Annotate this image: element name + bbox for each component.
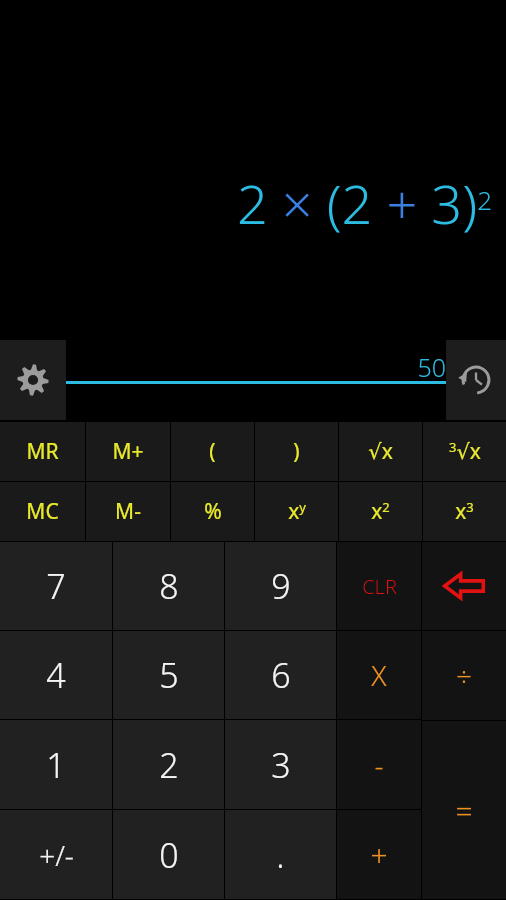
button[interactable]: 4 [0,631,112,719]
staticText: 2 [159,742,179,788]
button[interactable]: 0 [113,810,224,899]
button[interactable]: % [171,482,254,541]
button[interactable]: Backspace [422,542,506,630]
staticText: MC [26,497,59,526]
staticText: ÷ [456,657,472,695]
button[interactable]: ( [171,422,254,481]
staticText: 3√x [449,437,481,466]
button[interactable]: x2 [339,482,422,541]
staticText: 6 [271,652,291,698]
staticText: x2 [371,497,390,526]
staticText: 50 [417,350,446,384]
button[interactable]: √x [339,422,422,481]
staticText: √x [368,437,393,466]
button[interactable]: 3√x [423,422,506,481]
button[interactable]: CLR [337,542,421,630]
staticText: 3 [271,742,291,788]
button[interactable]: History [446,340,506,420]
staticText: 9 [271,563,291,609]
staticText: 1 [46,742,66,788]
staticText: ) [293,437,300,466]
staticText: MR [26,437,59,466]
staticText: xy [288,497,306,526]
button[interactable]: xy [255,482,338,541]
button[interactable]: ) [255,422,338,481]
button[interactable]: X [337,631,421,719]
button[interactable]: ÷ [422,631,506,720]
staticText: % [204,497,222,526]
staticText: - [374,746,384,784]
button[interactable]: 1 [0,720,112,809]
staticText: 2 × (2 + 3)2 [236,166,492,240]
staticText: CLR [362,573,397,600]
button[interactable]: + [337,810,421,899]
button[interactable]: 8 [113,542,224,630]
staticText: ( [209,437,216,466]
button[interactable]: M- [86,482,170,541]
button[interactable]: 7 [0,542,112,630]
staticText: 0 [159,832,179,878]
staticText: +/- [39,836,74,874]
button[interactable]: 9 [225,542,336,630]
button[interactable]: 3 [225,720,336,809]
button[interactable]: M+ [86,422,170,481]
staticText: 7 [46,563,66,609]
staticText: 5 [159,652,179,698]
staticText: 4 [46,652,66,698]
button[interactable]: 5 [113,631,224,719]
button[interactable]: 6 [225,631,336,719]
button[interactable]: +/- [0,810,112,899]
button[interactable]: - [337,720,421,809]
staticText: 8 [159,563,179,609]
staticText: M- [115,497,141,526]
button[interactable]: Settings [0,340,66,420]
staticText: X [371,656,387,694]
staticText: . [276,832,285,878]
button[interactable]: MR [0,422,85,481]
staticText: x3 [455,497,474,526]
button[interactable]: . [225,810,336,899]
staticText: M+ [112,437,144,466]
button[interactable]: = [422,721,506,899]
button[interactable]: 2 [113,720,224,809]
button[interactable]: MC [0,482,85,541]
staticText: + [370,834,388,875]
button[interactable]: x3 [423,482,506,541]
staticText: = [455,790,473,831]
